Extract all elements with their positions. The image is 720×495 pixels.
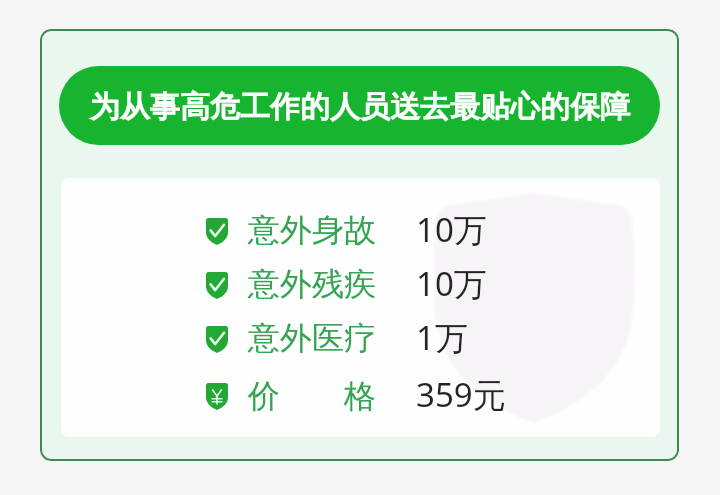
staticText: 359元 <box>416 372 506 417</box>
other: Price <box>206 383 228 410</box>
button[interactable]: Covered <box>206 204 566 258</box>
button[interactable]: Covered <box>206 312 566 366</box>
button[interactable]: Covered <box>206 258 566 312</box>
other: Covered <box>206 326 228 353</box>
staticText: 1万 <box>416 315 468 360</box>
staticText: 10万 <box>416 207 487 252</box>
other: Covered <box>206 218 228 245</box>
other: Covered <box>206 272 228 299</box>
staticText: 为从事高危工作的人员送去最贴心的保障 <box>90 88 630 126</box>
staticText: 意外残疾 <box>248 264 376 304</box>
staticText: 10万 <box>416 261 487 306</box>
staticText: 价 格 <box>248 373 376 417</box>
button[interactable]: Price <box>206 369 566 423</box>
staticText: 意外身故 <box>248 210 376 250</box>
button[interactable]: 为从事高危工作的人员送去最贴心的保障 <box>59 66 660 145</box>
staticText: 意外医疗 <box>248 318 376 358</box>
